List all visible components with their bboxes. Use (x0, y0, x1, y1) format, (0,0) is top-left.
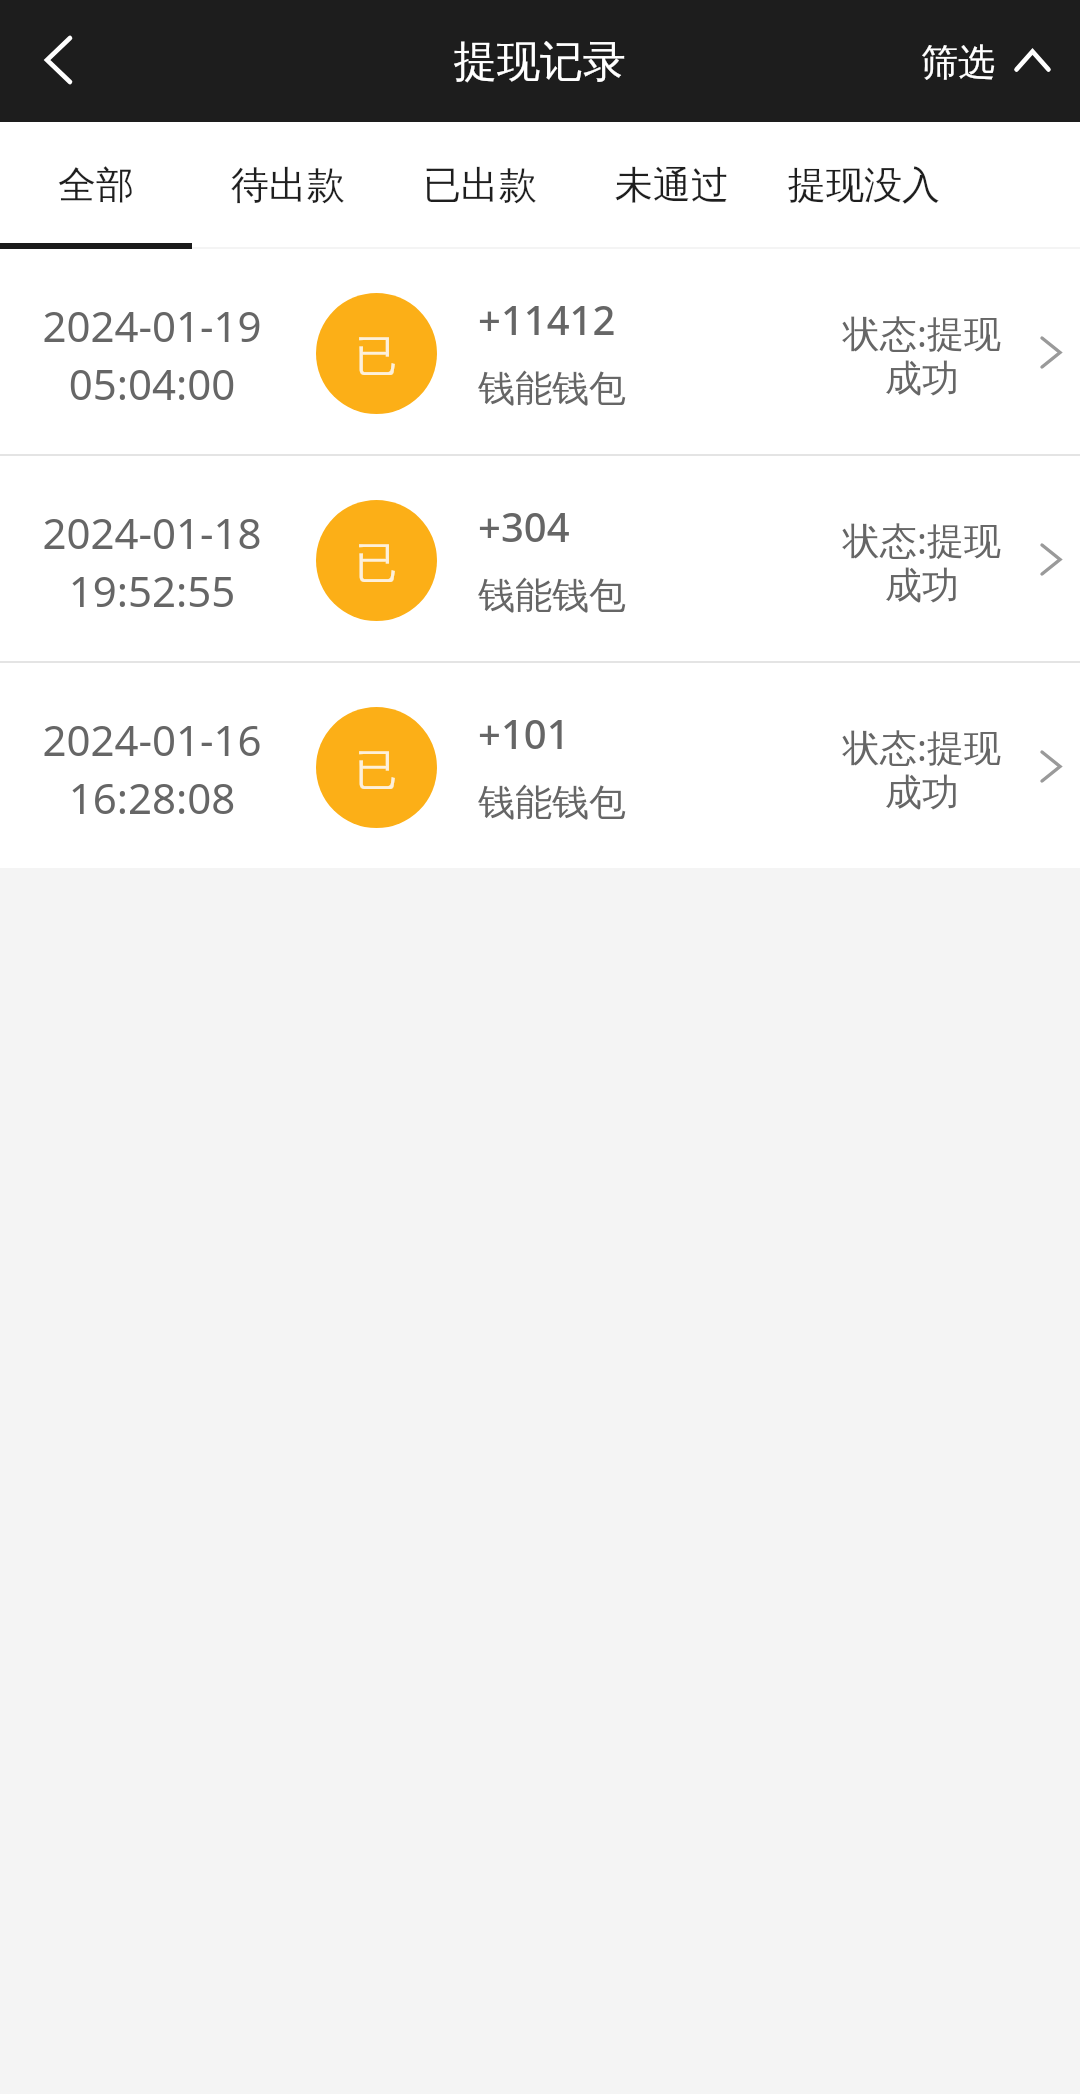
other: Open detail (1012, 335, 1080, 368)
button[interactable]: 已出款 (384, 122, 576, 249)
staticText: +101 (478, 706, 570, 760)
staticText: 已出款 (423, 161, 537, 209)
staticText: 2024-01-16 16:28:08 (42, 711, 262, 826)
staticText: 未通过 (615, 161, 729, 209)
button[interactable]: 2024-01-16 16:28:08 (0, 663, 1080, 868)
staticText: 钱能钱包 (478, 365, 626, 412)
staticText: 钱能钱包 (478, 779, 626, 826)
button[interactable]: 全部 (0, 122, 192, 249)
staticText: 已 (355, 330, 397, 383)
staticText: 状态:提现 成功 (843, 721, 1001, 816)
staticText: 2024-01-19 05:04:00 (42, 297, 262, 412)
staticText: 已 (355, 537, 397, 590)
staticText: +11412 (478, 292, 616, 346)
staticText: 全部 (58, 161, 134, 209)
staticText: 已 (355, 744, 397, 797)
button[interactable]: Back (0, 0, 118, 122)
other: Open detail (1012, 749, 1080, 782)
button[interactable]: 待出款 (192, 122, 384, 249)
staticText: 钱能钱包 (478, 572, 626, 619)
staticText: +304 (478, 499, 570, 553)
button[interactable]: 2024-01-18 19:52:55 (0, 456, 1080, 661)
staticText: 待出款 (231, 161, 345, 209)
staticText: 状态:提现 成功 (843, 514, 1001, 609)
button[interactable]: 提现没入 (768, 122, 960, 249)
button[interactable]: 2024-01-19 05:04:00 (0, 249, 1080, 454)
staticText: 提现记录 (454, 35, 626, 89)
staticText: 状态:提现 成功 (843, 307, 1001, 402)
other: Open detail (1012, 542, 1080, 575)
button[interactable]: 未通过 (576, 122, 768, 249)
staticText: 提现没入 (788, 161, 940, 209)
staticText: 筛选 (921, 39, 995, 86)
staticText: 2024-01-18 19:52:55 (42, 504, 262, 619)
button[interactable]: 筛选 (890, 0, 1080, 122)
